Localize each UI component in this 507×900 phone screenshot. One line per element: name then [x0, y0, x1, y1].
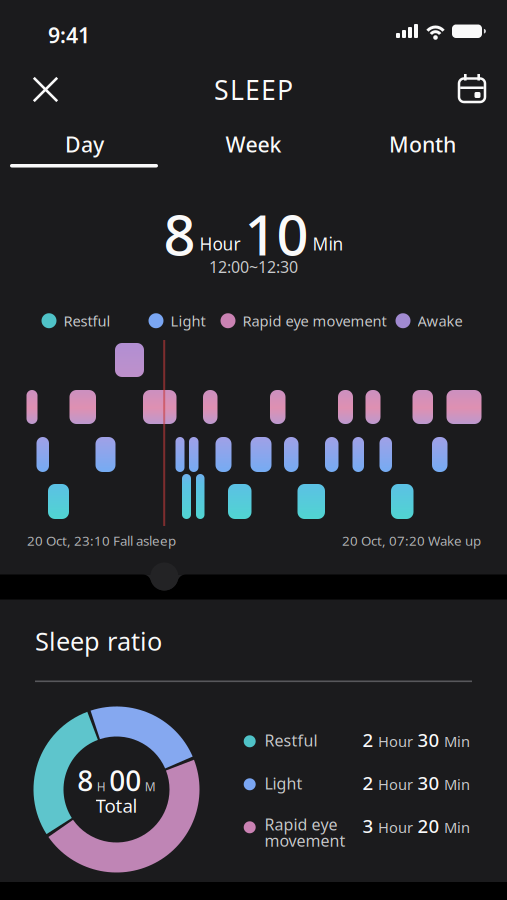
staticText: Light — [264, 773, 302, 794]
button[interactable]: Day — [0, 130, 169, 158]
staticText: Day — [65, 130, 104, 158]
staticText: 8 — [77, 762, 93, 799]
staticText: H — [97, 778, 106, 794]
button[interactable]: Week — [169, 130, 338, 158]
staticText: Total — [95, 793, 137, 818]
staticText: Rapid eye — [264, 814, 337, 835]
staticText: 3 — [362, 813, 373, 838]
staticText: Min — [444, 774, 470, 794]
staticText: 12:00~12:30 — [209, 256, 298, 277]
staticText: 00 — [109, 762, 141, 799]
staticText: Min — [312, 232, 343, 255]
staticText: 30 — [417, 770, 439, 795]
button[interactable] — [23, 67, 67, 111]
staticText: Restful — [264, 730, 317, 751]
staticText: Hour — [199, 232, 240, 255]
staticText: Min — [444, 817, 470, 837]
staticText: 30 — [417, 727, 439, 752]
staticText: Hour — [378, 817, 413, 837]
staticText: movement — [264, 830, 345, 851]
staticText: Hour — [378, 774, 413, 794]
staticText: Light — [170, 311, 205, 330]
staticText: Rapid eye movement — [242, 311, 386, 330]
staticText: Min — [444, 731, 470, 751]
staticText: 20 Oct, 23:10 Fall asleep — [27, 532, 176, 549]
button[interactable]: Month — [338, 130, 507, 158]
button[interactable] — [450, 68, 494, 112]
staticText: 20 Oct, 07:20 Wake up — [342, 532, 481, 549]
staticText: 2 — [362, 770, 373, 795]
staticText: SLEEP — [214, 72, 293, 107]
staticText: Sleep ratio — [35, 624, 162, 658]
staticText: M — [145, 778, 156, 794]
button[interactable] — [132, 555, 196, 601]
staticText: Awake — [417, 311, 462, 330]
staticText: 20 — [417, 813, 439, 838]
staticText: Month — [389, 130, 456, 158]
staticText: 10 — [244, 197, 308, 271]
staticText: Week — [225, 130, 281, 158]
staticText: Hour — [378, 731, 413, 751]
staticText: 9:41 — [48, 21, 90, 49]
staticText: Restful — [63, 311, 110, 330]
staticText: 2 — [362, 727, 373, 752]
staticText: 8 — [163, 197, 195, 271]
